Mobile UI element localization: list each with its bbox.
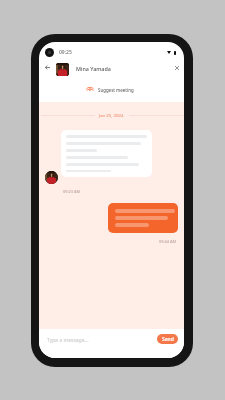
staticText: 09:25 [59,49,72,56]
button[interactable] [61,130,152,177]
staticText: 09:23 AM [63,189,80,194]
button[interactable]: Close [172,63,181,72]
staticText: Type a message... [47,337,89,344]
button[interactable]: Send [157,334,178,344]
button[interactable]: Back [43,63,52,72]
staticText: Suggest meeting [98,87,134,93]
staticText: Mina Yamada [76,65,111,72]
staticText: Jan 25, 2024 [99,112,124,118]
staticText: Send [162,336,174,343]
button[interactable]: Suggest meeting [86,85,134,95]
button[interactable] [108,203,178,233]
staticText: 09:44 AM [159,239,176,244]
